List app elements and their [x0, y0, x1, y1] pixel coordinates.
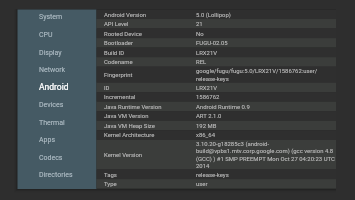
staticText: Kernel Architecture	[104, 131, 155, 138]
button[interactable]: Kernel Architecture	[97, 130, 337, 140]
staticText: 192 MB	[196, 122, 217, 129]
staticText: Kernel Version	[104, 151, 143, 158]
staticText: ART 2.1.0	[196, 112, 222, 119]
staticText: API Level	[104, 20, 129, 27]
button[interactable]: Tags	[97, 170, 337, 180]
staticText: 2014	[196, 162, 210, 169]
staticText: x86_64	[196, 131, 215, 138]
staticText: Directories	[39, 171, 73, 179]
staticText: System	[39, 13, 63, 21]
staticText: Network	[39, 66, 66, 74]
staticText: user	[196, 180, 208, 187]
staticText: 1586762	[196, 93, 220, 100]
button[interactable]: Thermal	[18, 114, 97, 132]
button[interactable]: Type	[97, 179, 337, 189]
button[interactable]: Java VM Version	[97, 111, 337, 121]
staticText: Tags	[104, 171, 117, 178]
staticText: Codecs	[39, 154, 63, 162]
button[interactable]: Codename	[97, 57, 337, 67]
button[interactable]: Network	[18, 61, 97, 79]
button[interactable]: Incremental	[97, 92, 337, 102]
staticText: 5.0 (Lollipop)	[196, 11, 231, 18]
staticText: Java VM Version	[104, 112, 149, 119]
button[interactable]: Fingerprint	[97, 67, 337, 83]
staticText: release-keys	[196, 171, 229, 178]
staticText: (GCC) ) #1 SMP PREEMPT Mon Oct 27 04:20:…	[196, 155, 335, 162]
staticText: 21	[196, 20, 203, 27]
staticText: CPU	[39, 31, 53, 39]
staticText: ID	[104, 84, 110, 91]
button[interactable]: Devices	[18, 96, 97, 114]
button[interactable]: Bootloader	[97, 38, 337, 48]
button[interactable]: Build ID	[97, 48, 337, 58]
button[interactable]: Android	[18, 79, 97, 97]
staticText: Android	[39, 82, 69, 92]
staticText: google/fugu/fugu:5.0/LRX21V/1586762:user…	[196, 67, 318, 74]
button[interactable]: Codecs	[18, 149, 97, 167]
button[interactable]: Kernel Version	[97, 140, 337, 170]
staticText: No	[196, 30, 204, 37]
staticText: Thermal	[39, 119, 65, 127]
staticText: FUGU-02.05	[196, 39, 228, 46]
button[interactable]: Apps	[18, 131, 97, 149]
staticText: Apps	[39, 136, 56, 144]
staticText: Android Runtime 0.9	[196, 103, 250, 110]
staticText: LRX21V	[196, 84, 218, 91]
staticText: REL	[196, 58, 207, 65]
staticText: Display	[39, 49, 62, 57]
button[interactable]: CPU	[18, 26, 97, 44]
staticText: Bootloader	[104, 39, 133, 46]
button[interactable]: API Level	[97, 19, 337, 29]
staticText: LRX21V	[196, 49, 218, 56]
button[interactable]: Directories	[18, 166, 97, 184]
staticText: Rooted Device	[104, 30, 142, 37]
staticText: Build ID	[104, 49, 125, 56]
staticText: Java VM Heap Size	[104, 122, 155, 129]
staticText: 3.10.20-g18285c3 (android-	[196, 140, 270, 147]
button[interactable]: Android Version	[97, 10, 337, 20]
staticText: Incremental	[104, 93, 136, 100]
staticText: Fingerprint	[104, 71, 133, 78]
button[interactable]: Java VM Heap Size	[97, 121, 337, 131]
button[interactable]: Display	[18, 44, 97, 62]
staticText: Type	[104, 180, 117, 187]
staticText: release-keys	[196, 75, 229, 82]
button[interactable]: System	[18, 8, 97, 26]
staticText: Codename	[104, 58, 133, 65]
staticText: build@vpbs1.mtv.corp.google.com) (gcc ve…	[196, 147, 334, 154]
button[interactable]: Rooted Device	[97, 29, 337, 39]
staticText: Devices	[39, 101, 64, 109]
button[interactable]: ID	[97, 83, 337, 93]
button[interactable]: Java Runtime Version	[97, 102, 337, 112]
staticText: Java Runtime Version	[104, 103, 162, 110]
staticText: Android Version	[104, 11, 147, 18]
